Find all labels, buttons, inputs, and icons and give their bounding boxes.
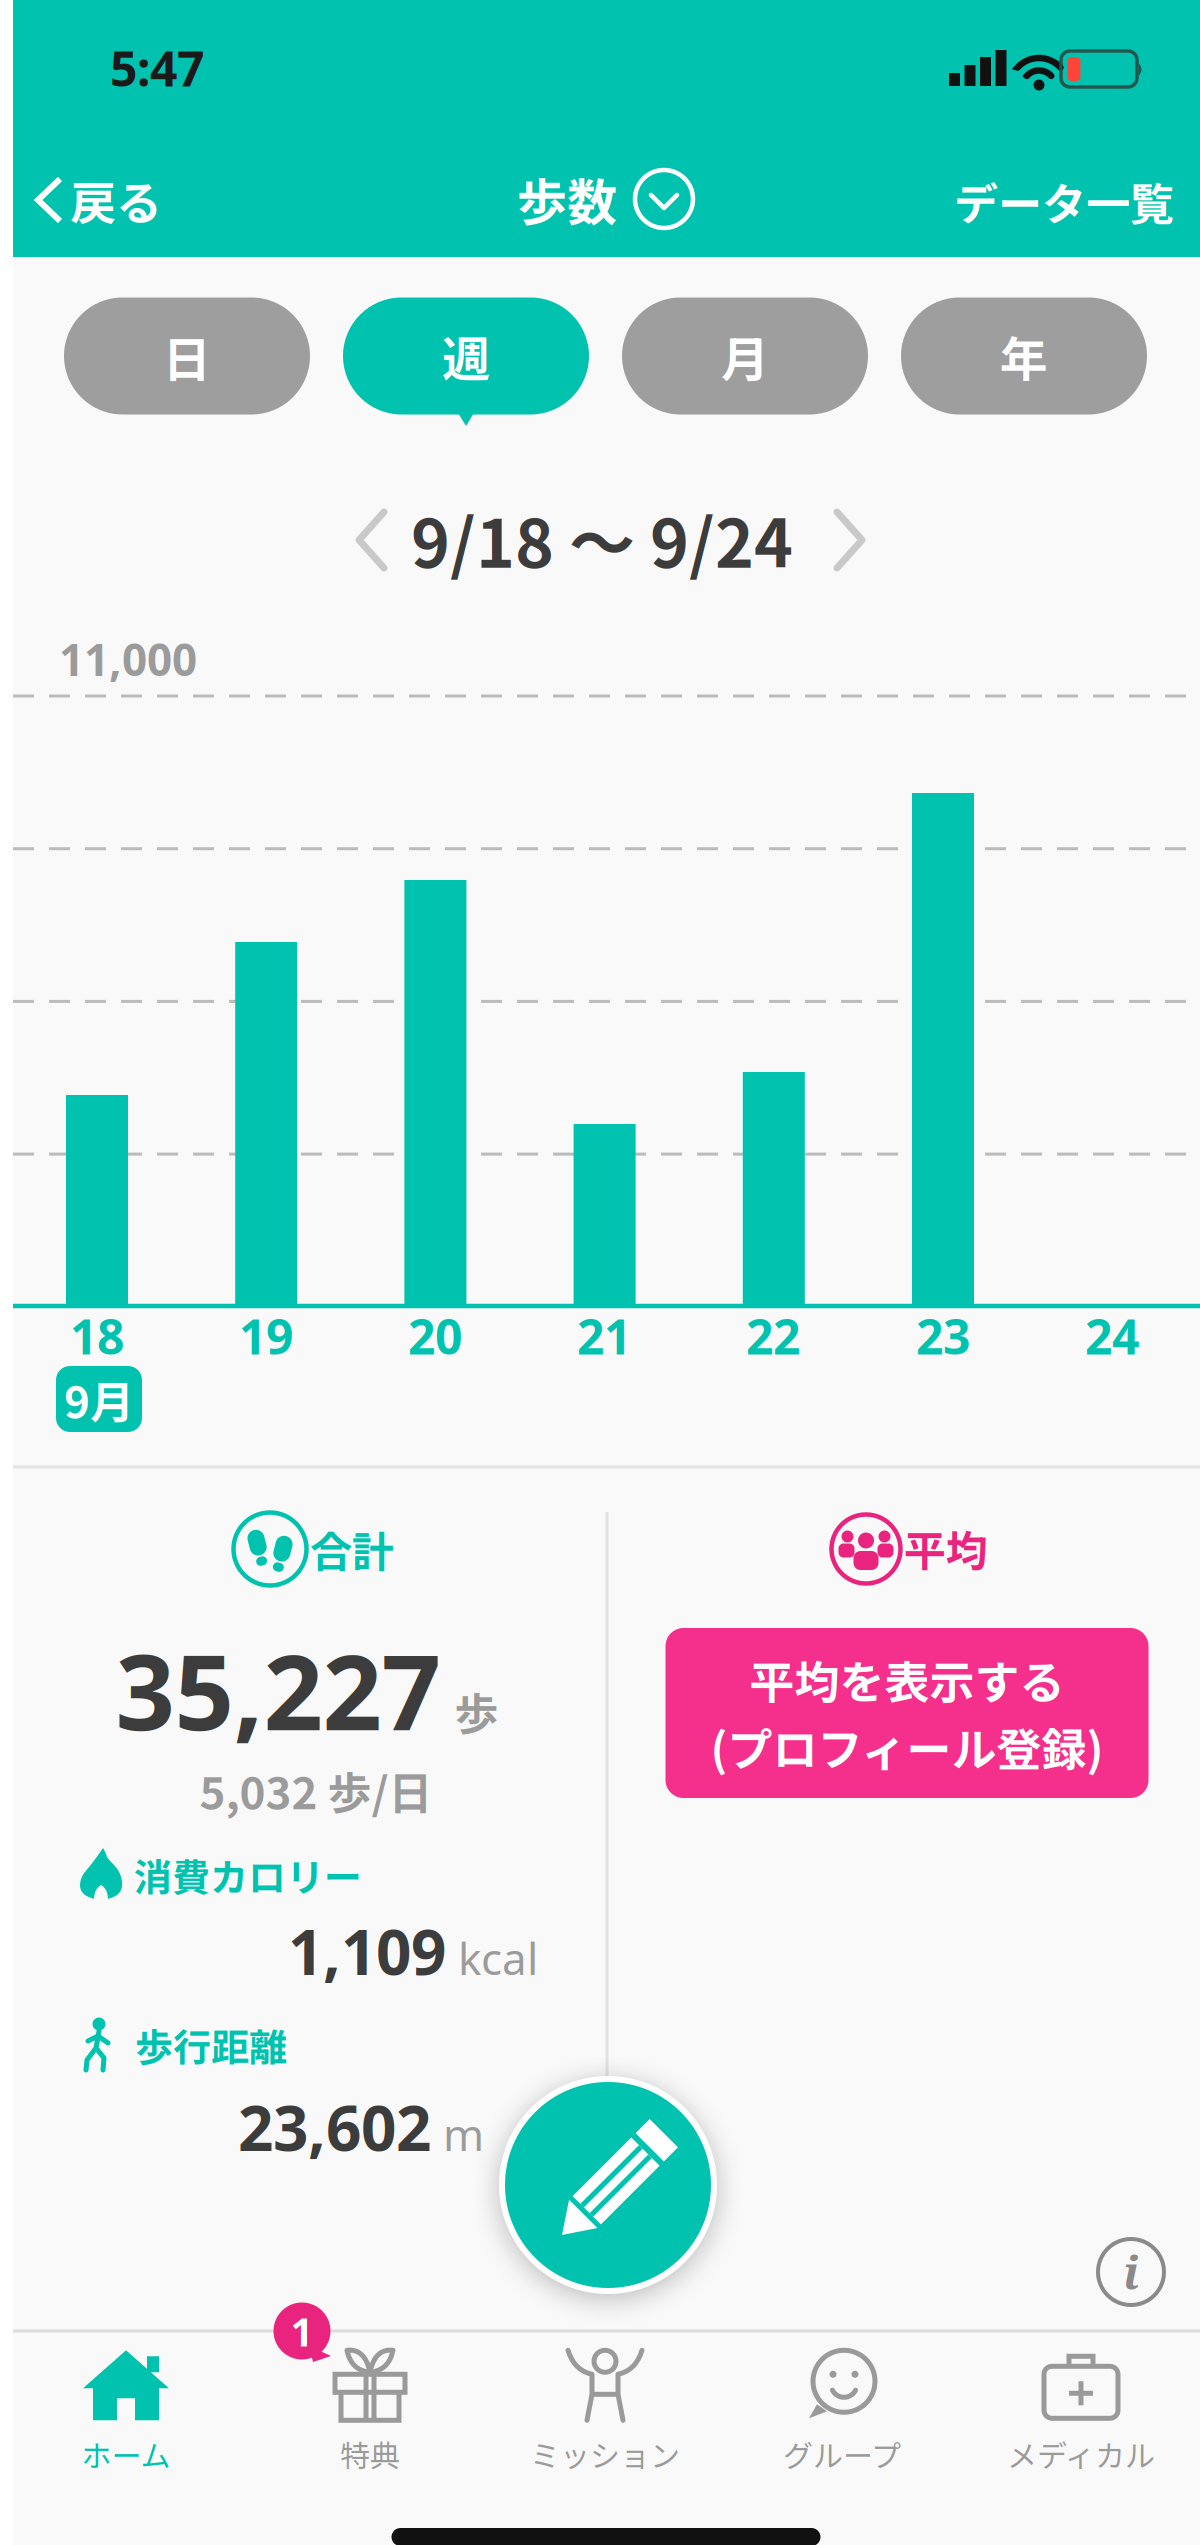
staticText: 18 bbox=[70, 1303, 124, 1369]
staticText: kcal bbox=[458, 1928, 538, 1988]
staticText: 21 bbox=[577, 1303, 631, 1369]
staticText: 11,000 bbox=[59, 629, 197, 689]
button[interactable]: 次の週 bbox=[832, 509, 868, 571]
staticText: 19 bbox=[239, 1303, 293, 1369]
button[interactable]: 情報 bbox=[1098, 2239, 1164, 2305]
button[interactable]: データ一覧 bbox=[954, 169, 1174, 233]
staticText: 合計 bbox=[310, 1519, 394, 1579]
staticText: 22 bbox=[746, 1303, 800, 1369]
button[interactable]: 年 bbox=[901, 297, 1147, 414]
staticText: (プロフィール登録) bbox=[710, 1714, 1103, 1779]
button[interactable]: 日 bbox=[64, 297, 310, 414]
staticText: 1,109 bbox=[288, 1909, 446, 1993]
staticText: 特典 bbox=[340, 2432, 400, 2476]
staticText: 月 bbox=[721, 321, 769, 391]
staticText: 年 bbox=[1000, 321, 1048, 391]
staticText: i bbox=[1123, 2241, 1139, 2303]
staticText: 35,227 bbox=[115, 1619, 440, 1761]
staticText: データ一覧 bbox=[954, 169, 1174, 233]
staticText: 週 bbox=[442, 321, 490, 391]
staticText: 23,602 bbox=[238, 2085, 431, 2169]
staticText: m bbox=[443, 2104, 484, 2164]
staticText: 5:47 bbox=[110, 35, 204, 101]
button[interactable]: 歩数 bbox=[517, 163, 693, 235]
staticText: 9/18 〜 9/24 bbox=[411, 491, 793, 587]
staticText: 歩数 bbox=[517, 163, 617, 235]
staticText: 平均を表示する bbox=[749, 1647, 1064, 1712]
button[interactable]: 特典 bbox=[255, 2342, 485, 2482]
staticText: 歩行距離 bbox=[135, 2017, 287, 2072]
staticText: 平均 bbox=[904, 1518, 988, 1578]
button[interactable]: 前の週 bbox=[354, 509, 390, 571]
staticText: 20 bbox=[408, 1303, 462, 1369]
staticText: メディカル bbox=[1007, 2432, 1155, 2476]
staticText: 24 bbox=[1085, 1303, 1139, 1369]
button[interactable]: 戻る bbox=[34, 167, 162, 233]
button[interactable]: 平均を表示する bbox=[665, 1628, 1148, 1798]
button[interactable]: 記録を編集 bbox=[499, 2076, 717, 2294]
button[interactable]: グループ bbox=[727, 2342, 957, 2482]
staticText: 5,032 歩/日 bbox=[199, 1758, 432, 1822]
staticText: ホーム bbox=[81, 2432, 170, 2476]
staticText: 9月 bbox=[64, 1367, 134, 1431]
button[interactable]: 週 bbox=[343, 297, 589, 414]
button[interactable]: 月 bbox=[622, 297, 868, 414]
staticText: 1 bbox=[290, 2304, 313, 2358]
staticText: 消費カロリー bbox=[134, 1847, 362, 1902]
staticText: 歩 bbox=[454, 1679, 498, 1743]
staticText: グループ bbox=[783, 2432, 901, 2476]
button[interactable]: ホーム bbox=[11, 2342, 241, 2482]
button[interactable]: メディカル bbox=[966, 2342, 1196, 2482]
staticText: 戻る bbox=[70, 167, 162, 233]
staticText: ミッション bbox=[530, 2432, 680, 2476]
button[interactable]: ミッション bbox=[490, 2342, 720, 2482]
staticText: 23 bbox=[916, 1303, 970, 1369]
staticText: 日 bbox=[163, 321, 211, 391]
